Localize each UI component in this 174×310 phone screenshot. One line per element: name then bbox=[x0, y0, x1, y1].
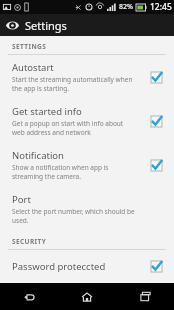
staticText: Show a notification when app is streamin… bbox=[12, 163, 109, 181]
button[interactable]: App icon bbox=[0, 14, 174, 36]
staticText: Start the streaming automatically when t… bbox=[12, 75, 133, 93]
staticText: Password proteccted bbox=[12, 260, 106, 273]
button[interactable]: Toggle Autostart bbox=[146, 67, 166, 87]
button[interactable]: Autostart bbox=[0, 55, 174, 99]
staticText: Get a popup on start with info about web… bbox=[12, 119, 124, 137]
button[interactable]: Home bbox=[58, 283, 116, 310]
staticText: Autostart bbox=[12, 61, 54, 74]
staticText: 12:45 bbox=[150, 1, 172, 13]
button[interactable]: Back bbox=[0, 283, 58, 310]
button[interactable]: Toggle Password proteccted bbox=[146, 256, 166, 276]
button[interactable]: Password proteccted bbox=[0, 250, 174, 282]
button[interactable]: Recent apps bbox=[116, 283, 174, 310]
staticText: Notification bbox=[12, 149, 64, 162]
staticText: Settings bbox=[25, 18, 67, 33]
button[interactable]: Toggle Notification bbox=[146, 155, 166, 175]
staticText: Select the port number, which should be … bbox=[12, 207, 146, 225]
button[interactable]: Toggle Get started info bbox=[146, 111, 166, 131]
staticText: Get started info bbox=[12, 105, 82, 118]
button[interactable]: Port bbox=[0, 187, 174, 231]
staticText: 82% bbox=[119, 2, 133, 12]
button[interactable]: Get started info bbox=[0, 99, 174, 143]
staticText: SECURITY bbox=[12, 237, 47, 246]
staticText: SETTINGS bbox=[12, 42, 47, 51]
button[interactable]: Notification bbox=[0, 143, 174, 187]
other: App icon bbox=[4, 17, 20, 33]
staticText: Port bbox=[12, 193, 31, 206]
